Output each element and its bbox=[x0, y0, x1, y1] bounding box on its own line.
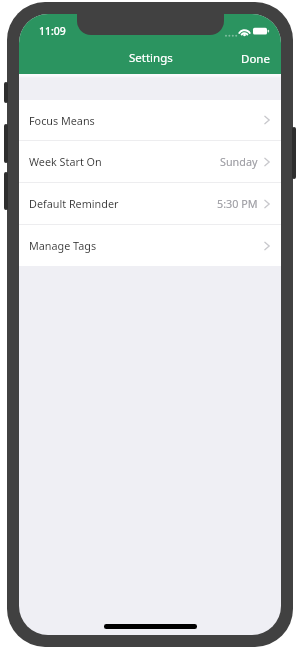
staticText: 11:09 bbox=[39, 24, 66, 38]
button[interactable]: Done bbox=[231, 48, 281, 74]
button[interactable]: Default Reminder bbox=[19, 183, 281, 225]
staticText: Default Reminder bbox=[29, 196, 119, 211]
button[interactable]: Week Start On bbox=[19, 141, 281, 183]
staticText: Manage Tags bbox=[29, 238, 97, 253]
button[interactable]: Manage Tags bbox=[19, 225, 281, 266]
staticText: Settings bbox=[129, 50, 173, 66]
staticText: 5:30 PM bbox=[217, 196, 258, 211]
staticText: Week Start On bbox=[29, 154, 102, 169]
staticText: Sunday bbox=[220, 154, 258, 169]
button[interactable]: Focus Means bbox=[19, 100, 281, 141]
staticText: Focus Means bbox=[29, 113, 95, 128]
staticText: Done bbox=[241, 51, 270, 67]
